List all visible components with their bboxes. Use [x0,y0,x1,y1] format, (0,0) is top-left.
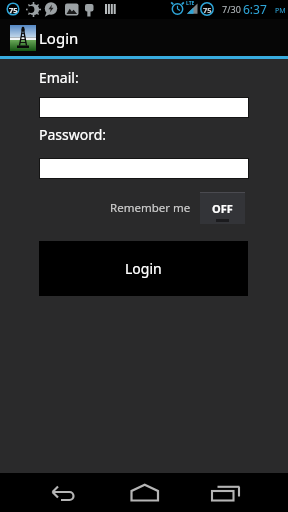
staticText: Remember me [110,200,191,216]
staticText: Login [125,259,162,278]
button[interactable]: Login [39,241,248,296]
staticText: Login [39,28,79,48]
staticText: 7/30 [222,3,241,15]
button[interactable] [96,473,192,512]
staticText: 6:37 [243,1,267,17]
button[interactable]: OFF [200,192,245,224]
staticText: Email: [39,68,79,87]
staticText: PM [275,6,286,16]
staticText: Password: [39,125,107,144]
button[interactable] [39,97,249,118]
staticText: LTE [186,0,195,7]
staticText: OFF [212,201,233,216]
button[interactable] [192,473,288,512]
staticText: 75 [9,5,18,15]
button[interactable] [0,473,96,512]
button[interactable] [39,158,249,179]
staticText: 75 [203,5,212,15]
